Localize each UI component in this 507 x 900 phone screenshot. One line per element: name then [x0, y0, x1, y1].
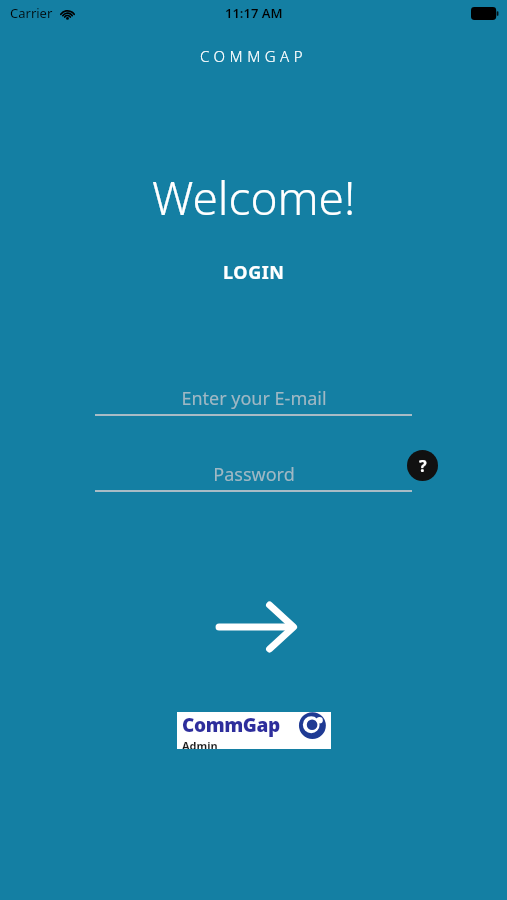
button[interactable]: CommGap — [177, 712, 331, 749]
button[interactable]: Password — [95, 462, 412, 492]
staticText: LOGIN — [223, 260, 285, 285]
staticText: Enter your E-mail — [181, 386, 327, 411]
staticText: Password — [213, 462, 295, 487]
button[interactable]: Help — [407, 450, 438, 481]
staticText: Welcome! — [152, 166, 356, 229]
staticText: Admin — [182, 738, 218, 749]
staticText: COMMGAP — [200, 46, 308, 66]
staticText: ? — [419, 455, 427, 477]
staticText: CommGap — [182, 712, 280, 738]
button[interactable]: Enter your E-mail — [95, 386, 412, 416]
staticText: 11:17 AM — [225, 4, 283, 22]
button[interactable]: Submit — [203, 596, 305, 658]
staticText: Carrier — [10, 4, 53, 22]
